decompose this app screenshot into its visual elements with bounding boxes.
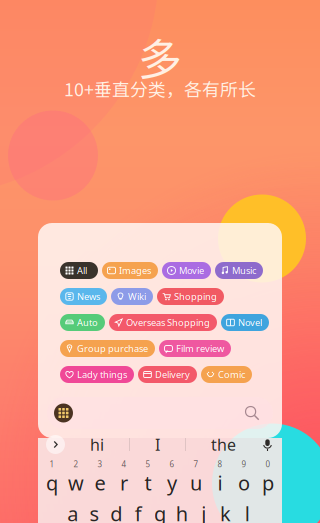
button[interactable]: News [60,288,107,305]
button[interactable]: 7 [184,460,208,494]
button[interactable]: 4 [112,460,136,494]
button[interactable]: d [105,496,127,523]
staticText: 3 [97,459,102,469]
button[interactable]: k [214,496,236,523]
staticText: 7 [193,459,198,469]
staticText: h [176,500,188,523]
button[interactable]: Film review [159,340,231,357]
staticText: e [94,469,105,496]
staticText: a [67,500,78,523]
staticText: 9 [241,459,246,469]
staticText: p [262,469,274,496]
button[interactable]: 3 [88,460,112,494]
staticText: 5 [145,459,150,469]
button[interactable]: 5 [136,460,160,494]
staticText: Music [232,264,256,277]
staticText: Lady things [77,368,127,381]
button[interactable]: a [62,496,84,523]
button[interactable]: s [84,496,105,523]
staticText: 4 [121,459,126,469]
staticText: s [89,500,99,523]
staticText: Overseas Shopping [126,316,210,329]
staticText: k [220,500,231,523]
staticText: q [46,469,58,496]
button[interactable]: Group purchase [60,340,155,357]
staticText: 6 [169,459,174,469]
button[interactable]: 0 [256,460,280,494]
button[interactable]: Images [102,262,158,279]
staticText: Delivery [155,368,190,381]
staticText: u [190,469,202,496]
staticText: 0 [265,459,270,469]
button[interactable]: g [149,496,171,523]
button[interactable]: Wiki [111,288,153,305]
staticText: 多 [138,25,182,88]
staticText: News [77,290,100,303]
button[interactable]: Lady things [60,366,134,383]
staticText: j [201,500,206,523]
staticText: Comic [218,368,245,381]
staticText: Shopping [174,290,217,303]
staticText: 2 [73,459,78,469]
staticText: Wiki [128,290,146,303]
staticText: 8 [217,459,222,469]
staticText: Images [119,264,151,277]
button[interactable]: Comic [201,366,252,383]
staticText: y [167,469,177,496]
button[interactable]: Movie [162,262,211,279]
staticText: o [238,469,250,496]
button[interactable]: All [60,262,98,279]
staticText: 1 [49,459,54,469]
staticText: All [77,264,87,277]
button[interactable]: Delivery [138,366,197,383]
staticText: I [155,434,160,455]
button[interactable]: 2 [64,460,88,494]
staticText: Film review [176,342,224,355]
staticText: Novel [238,316,262,329]
staticText: i [217,469,222,496]
button[interactable]: j [193,496,214,523]
button[interactable]: 9 [232,460,256,494]
button[interactable]: Shopping [157,288,224,305]
staticText: l [245,500,250,523]
button[interactable]: Overseas Shopping [109,314,217,331]
staticText: d [110,500,122,523]
staticText: w [68,469,84,496]
button[interactable]: Novel [221,314,269,331]
staticText: Movie [179,264,204,277]
staticText: hi [90,434,104,455]
button[interactable]: l [236,496,258,523]
staticText: r [120,469,128,496]
staticText: f [135,500,142,523]
button[interactable]: Auto [60,314,105,331]
button[interactable] [47,397,273,429]
staticText: 10+垂直分类，各有所长 [64,76,256,101]
staticText: the [211,434,236,455]
staticText: Auto [77,316,98,329]
staticText: t [144,469,151,496]
button[interactable]: 8 [208,460,232,494]
button[interactable]: f [127,496,149,523]
button[interactable]: h [171,496,193,523]
button[interactable]: 6 [160,460,184,494]
button[interactable]: Music [215,262,263,279]
staticText: Group purchase [77,342,148,355]
button[interactable]: 1 [40,460,64,494]
staticText: g [154,500,166,523]
